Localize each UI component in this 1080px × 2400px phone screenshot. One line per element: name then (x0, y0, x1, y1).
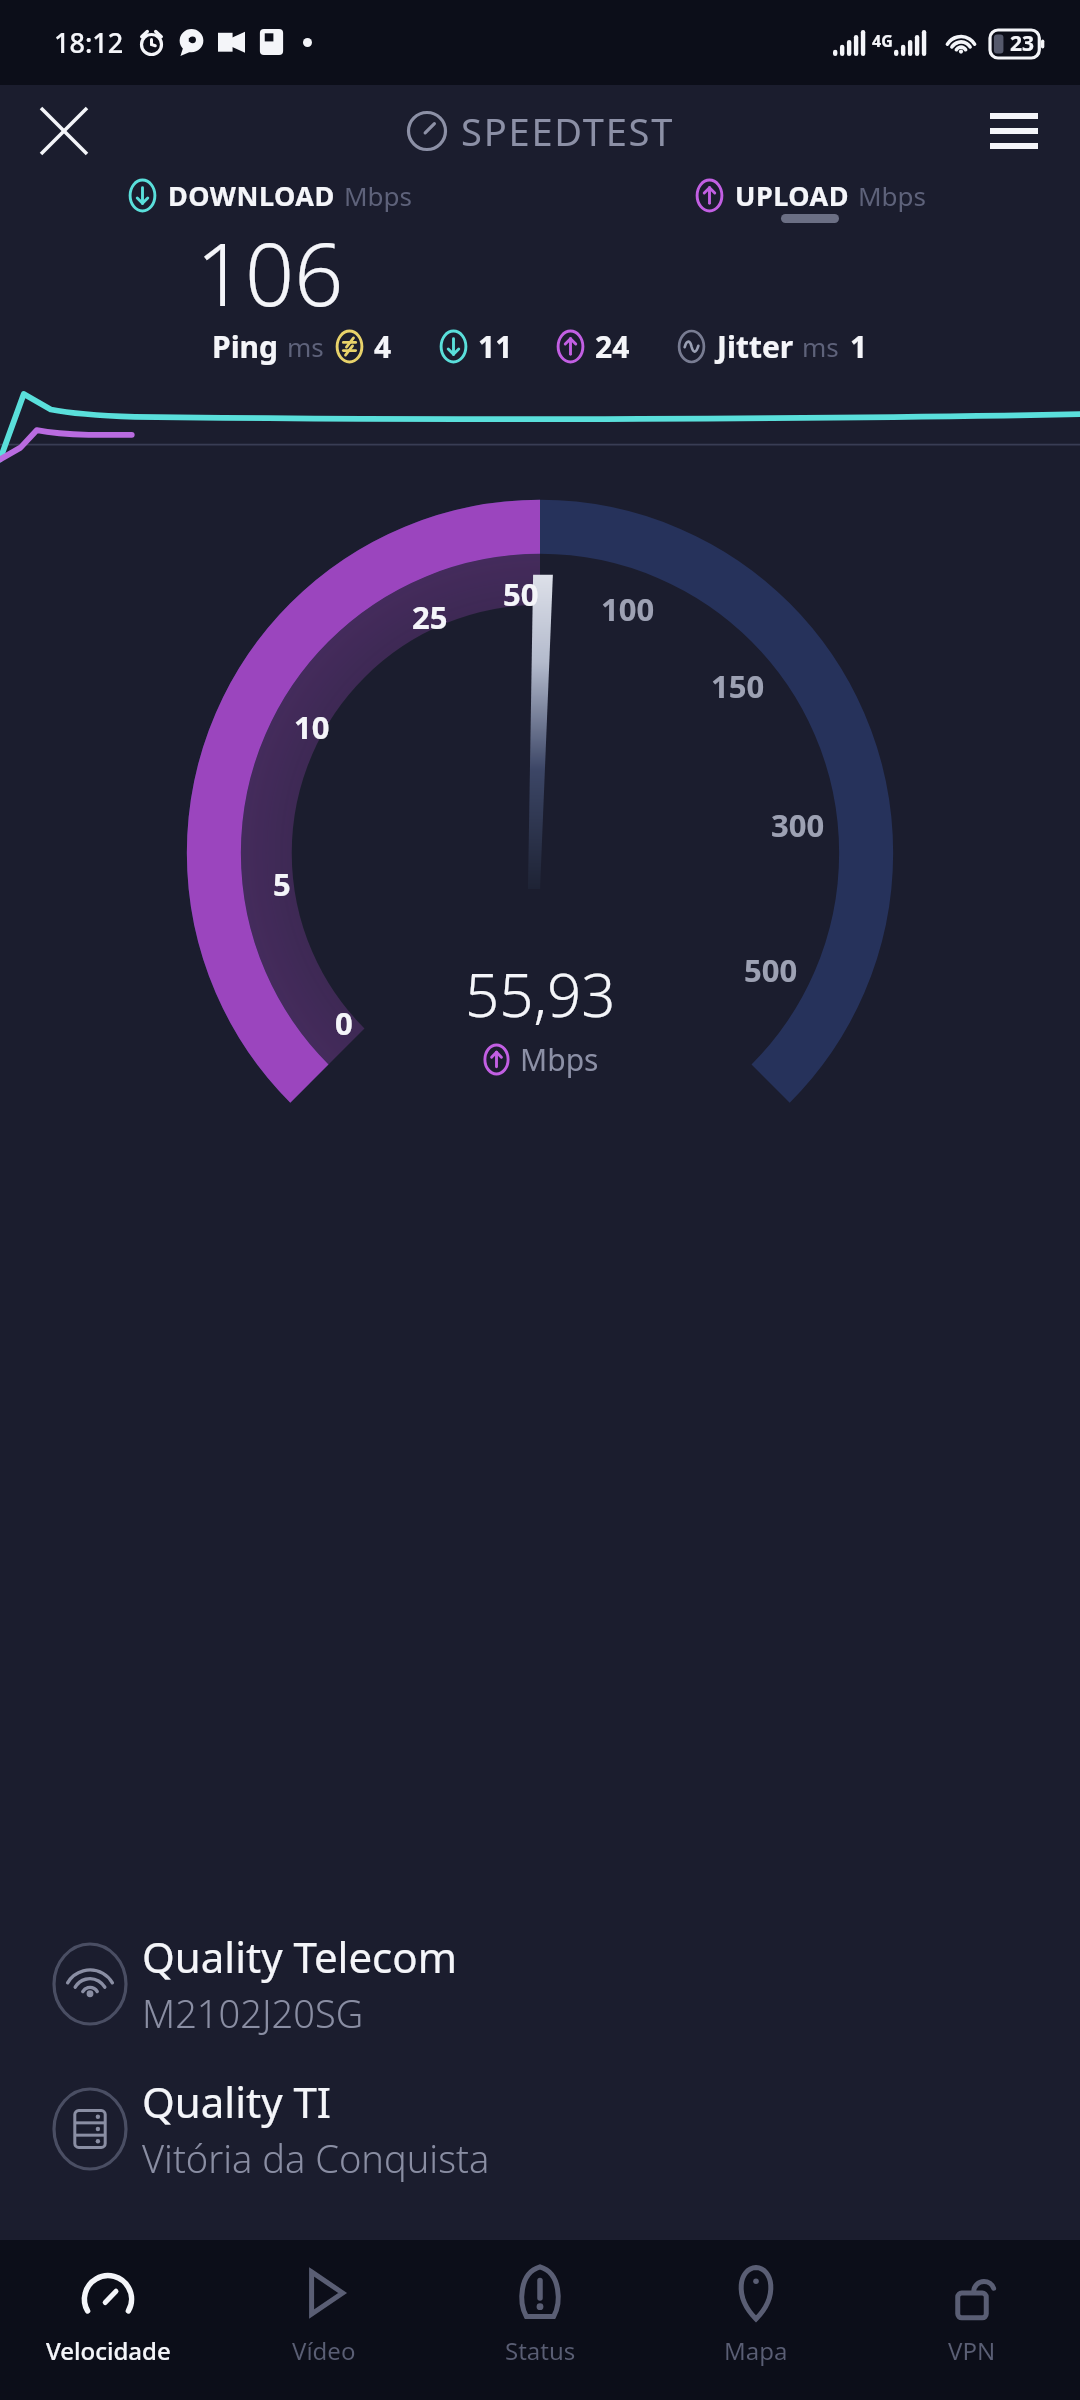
staticText: 25 (412, 596, 448, 638)
staticText: 10 (294, 706, 330, 748)
staticText: 11 (478, 326, 513, 367)
staticText: SPEEDTEST (461, 105, 675, 157)
button[interactable]: Menu (976, 93, 1052, 169)
staticText: DOWNLOAD (168, 177, 335, 214)
staticText: 5 (273, 863, 291, 905)
staticText: 4 (374, 326, 392, 367)
staticText: UPLOAD (735, 177, 849, 214)
staticText: Status (505, 2334, 576, 2367)
staticText: 106 (196, 214, 344, 326)
staticText: 0 (335, 1002, 353, 1044)
button[interactable]: Status (432, 2240, 648, 2400)
button[interactable]: Mapa (648, 2240, 864, 2400)
button[interactable]: VPN (864, 2240, 1080, 2400)
button[interactable]: Quality TI (0, 2063, 1080, 2194)
staticText: Quality Telecom (142, 1928, 457, 1985)
staticText: 24 (595, 326, 630, 367)
staticText: M2102J20SG (142, 1987, 364, 2039)
staticText: ms (287, 329, 324, 364)
staticText: ms (802, 329, 839, 364)
button[interactable]: Velocidade (0, 2240, 216, 2400)
staticText: VPN (948, 2334, 996, 2367)
button[interactable]: Quality Telecom (0, 1918, 1080, 2049)
staticText: Jitter (717, 326, 794, 367)
staticText: 18:12 (54, 24, 124, 61)
staticText: 150 (711, 665, 765, 707)
staticText: 4G (872, 30, 893, 52)
staticText: 1 (850, 326, 868, 367)
staticText: Ping (212, 326, 279, 367)
staticText: Velocidade (46, 2334, 171, 2367)
staticText: 500 (744, 949, 798, 991)
staticText: 300 (771, 804, 825, 846)
staticText: Mbps (344, 178, 413, 213)
staticText: Vitória da Conquista (142, 2132, 490, 2184)
staticText: 55,93 (465, 953, 616, 1035)
staticText: 23 (1010, 29, 1035, 58)
staticText: 100 (601, 588, 655, 630)
staticText: Mbps (520, 1039, 599, 1080)
staticText: 50 (503, 573, 539, 615)
button[interactable]: Vídeo (216, 2240, 432, 2400)
staticText: Quality TI (142, 2073, 332, 2130)
staticText: Mbps (858, 178, 927, 213)
staticText: Mapa (724, 2334, 788, 2367)
button[interactable]: Close (26, 93, 102, 169)
staticText: Vídeo (292, 2334, 356, 2367)
